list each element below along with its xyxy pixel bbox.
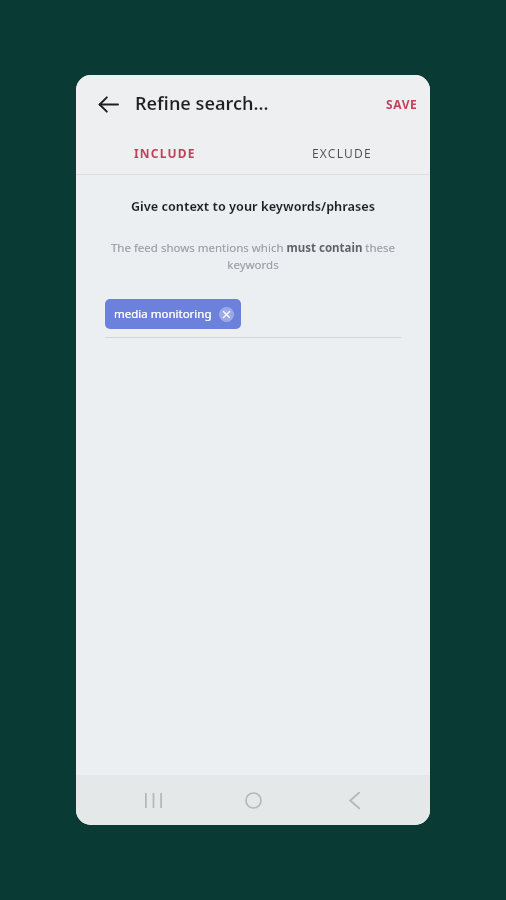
staticText: The feed shows mentions which must conta… (106, 240, 400, 273)
button[interactable]: Home (229, 776, 277, 824)
staticText: media monitoring (114, 306, 212, 322)
button[interactable]: Back (88, 84, 128, 124)
button[interactable]: Recents (129, 776, 177, 824)
button[interactable]: media monitoring (105, 299, 241, 329)
staticText: Refine search... (135, 91, 269, 116)
staticText: Give context to your keywords/phrases (76, 198, 430, 215)
button[interactable]: SAVE (374, 86, 430, 122)
staticText: INCLUDE (134, 145, 196, 161)
button[interactable]: INCLUDE (76, 132, 253, 174)
staticText: SAVE (386, 96, 418, 112)
button[interactable]: Back (330, 776, 378, 824)
button[interactable]: EXCLUDE (253, 132, 430, 174)
other: Remove keyword (219, 307, 234, 322)
staticText: EXCLUDE (312, 145, 372, 161)
